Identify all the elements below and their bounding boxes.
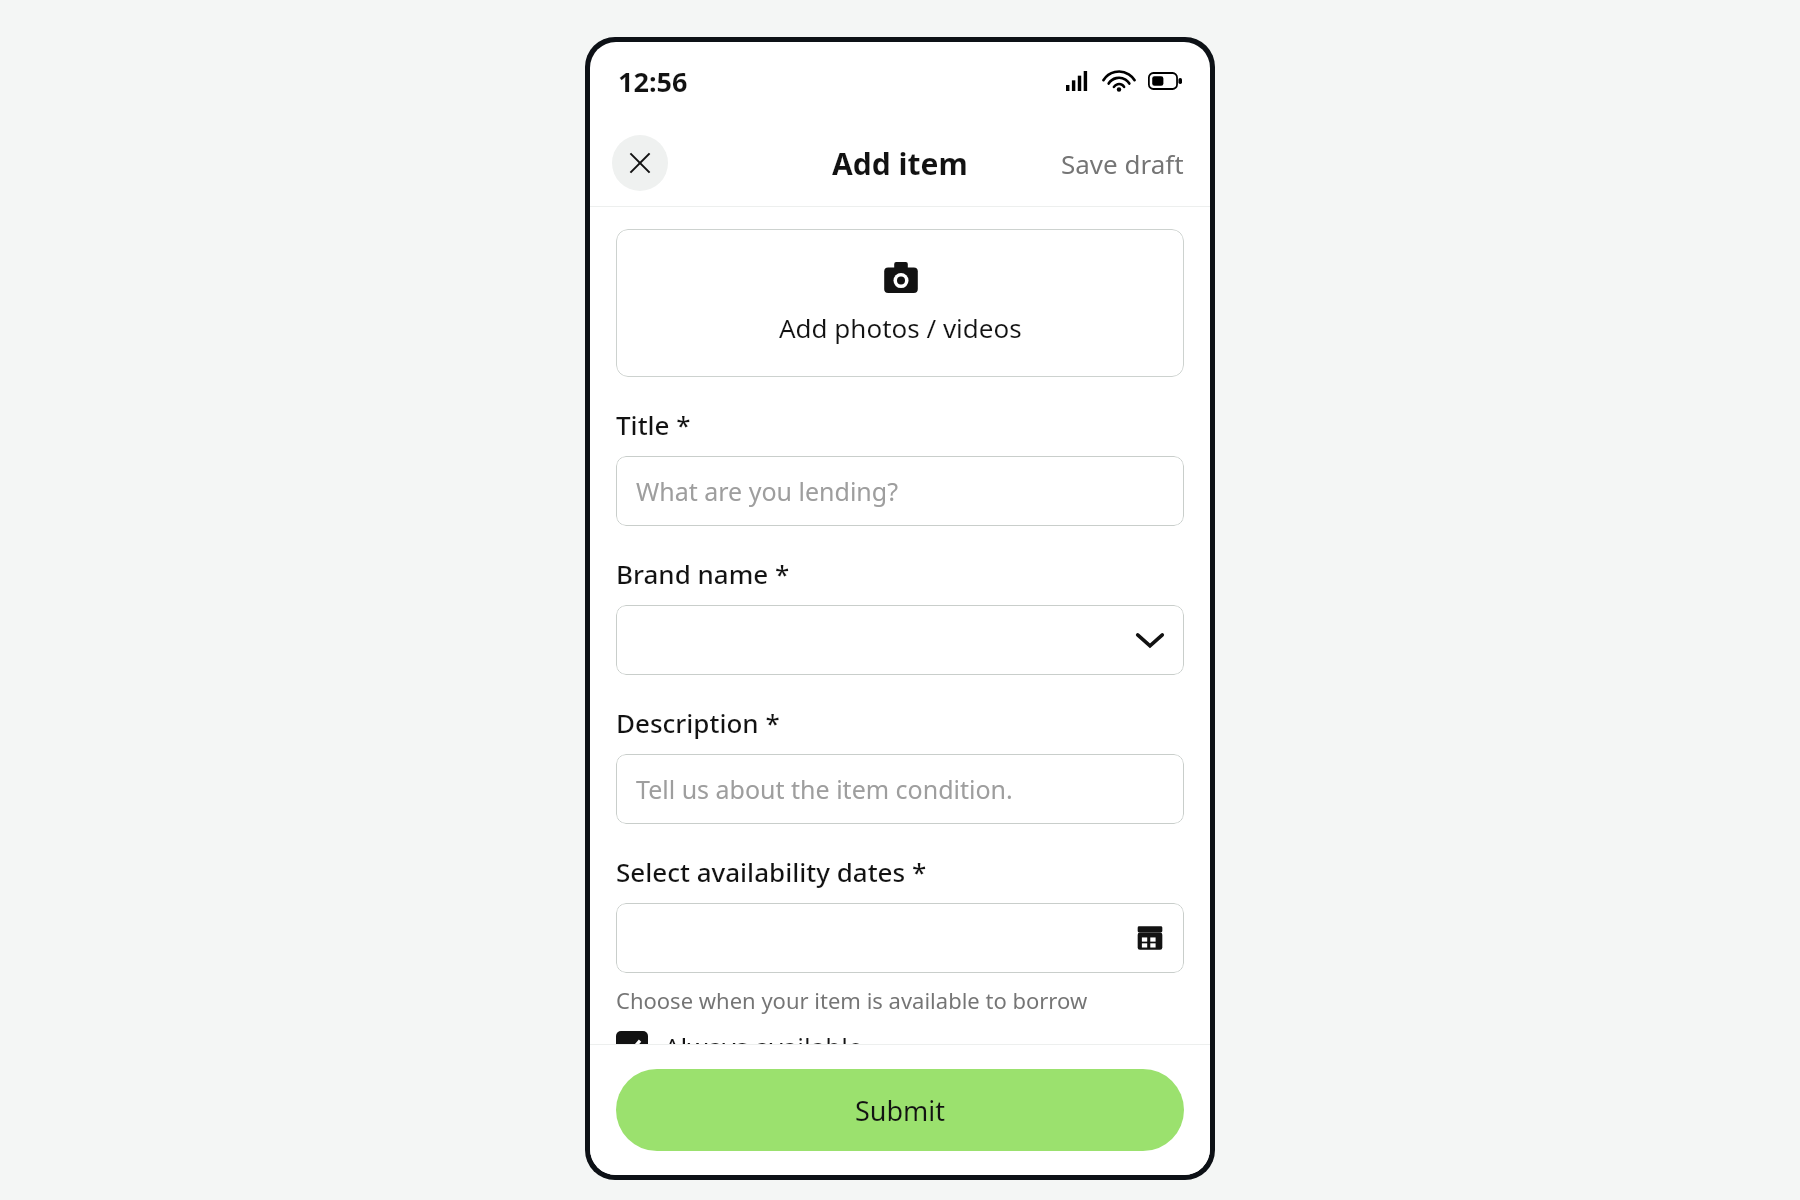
staticText: Brand name *: [616, 556, 790, 591]
staticText: Always available: [664, 1029, 863, 1064]
staticText: Choose when your item is available to bo…: [616, 985, 1088, 1015]
staticText: Description *: [616, 705, 780, 740]
button[interactable]: Tell us about the item condition.: [616, 754, 1184, 824]
staticText: 12:56: [618, 63, 688, 100]
staticText: What are you lending?: [636, 474, 899, 508]
button[interactable]: Select brand: [616, 605, 1184, 675]
button[interactable]: Pick dates: [616, 903, 1184, 973]
button[interactable]: Close: [612, 135, 668, 191]
staticText: Add item: [832, 143, 968, 184]
button[interactable]: What are you lending?: [616, 456, 1184, 526]
staticText: Tell us about the item condition.: [636, 772, 1013, 806]
staticText: Select availability dates *: [616, 854, 927, 889]
staticText: Save draft: [1061, 146, 1184, 181]
button[interactable]: Submit: [616, 1069, 1184, 1151]
button[interactable]: Add photos / videos: [616, 229, 1184, 377]
button[interactable]: Save draft: [1057, 138, 1188, 189]
button[interactable]: Always available: [616, 1029, 863, 1064]
staticText: Add photos / videos: [779, 310, 1022, 345]
staticText: Title *: [616, 407, 691, 442]
staticText: Submit: [855, 1092, 946, 1129]
